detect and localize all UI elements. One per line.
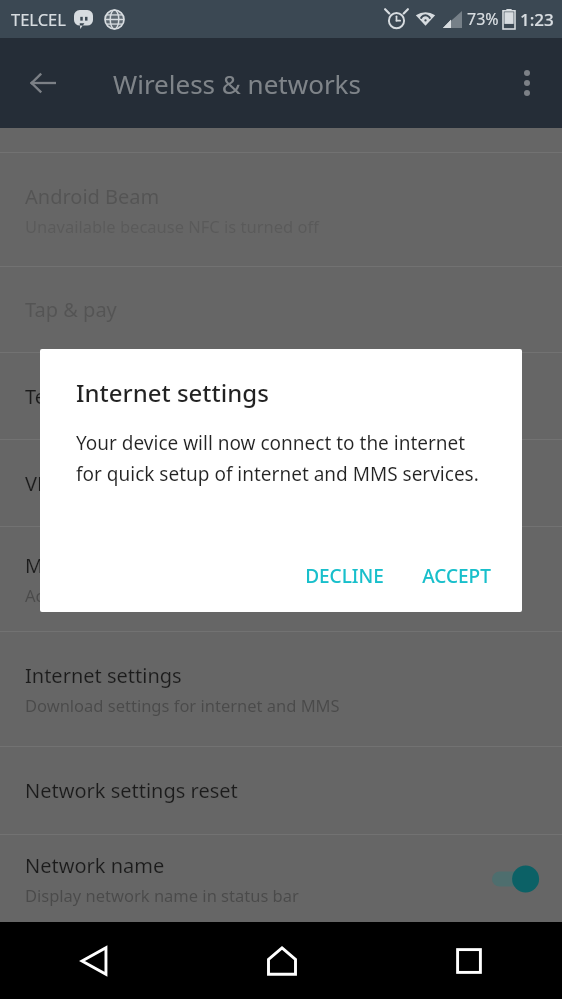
staticText: Unavailable because NFC is turned off [25, 215, 319, 237]
button[interactable]: Network settings reset [0, 747, 562, 834]
staticText: Mobile networks [25, 552, 182, 579]
staticText: 1:23 [520, 8, 554, 31]
staticText: ACCEPT [422, 563, 491, 589]
button[interactable]: Mobile networks [0, 527, 562, 631]
staticText: Your device will now connect to the inte… [76, 430, 488, 486]
button[interactable]: More options [500, 56, 554, 110]
staticText: Network settings reset [25, 777, 238, 804]
button[interactable]: Home [188, 922, 375, 999]
button[interactable]: ACCEPT [409, 552, 504, 600]
staticText: Access point names, data roaming [25, 584, 292, 606]
staticText: Android Beam [25, 183, 160, 210]
button[interactable]: Navigate up [14, 54, 72, 112]
staticText: Internet settings [76, 376, 269, 409]
staticText: TELCEL [11, 8, 66, 30]
staticText: 73% [467, 8, 499, 30]
button[interactable]: VPN [0, 440, 562, 526]
staticText: Download settings for internet and MMS [25, 694, 340, 716]
staticText: Internet settings [25, 662, 182, 689]
staticText: VPN [25, 470, 65, 497]
button[interactable]: Network name [0, 835, 562, 922]
button[interactable]: Tap & pay [0, 267, 562, 352]
button[interactable]: Internet settings [0, 632, 562, 746]
staticText: Network name [25, 852, 165, 879]
button[interactable]: Back [0, 922, 188, 999]
button[interactable]: Recent apps [375, 922, 562, 999]
staticText: Tap & pay [25, 296, 117, 323]
staticText: Display network name in status bar [25, 884, 299, 906]
button[interactable]: Tethering & portable hotspot [0, 353, 562, 439]
button[interactable]: DECLINE [292, 552, 397, 600]
staticText: Tethering & portable hotspot [25, 383, 298, 410]
staticText: Wireless & networks [113, 66, 361, 101]
staticText: DECLINE [305, 563, 384, 589]
